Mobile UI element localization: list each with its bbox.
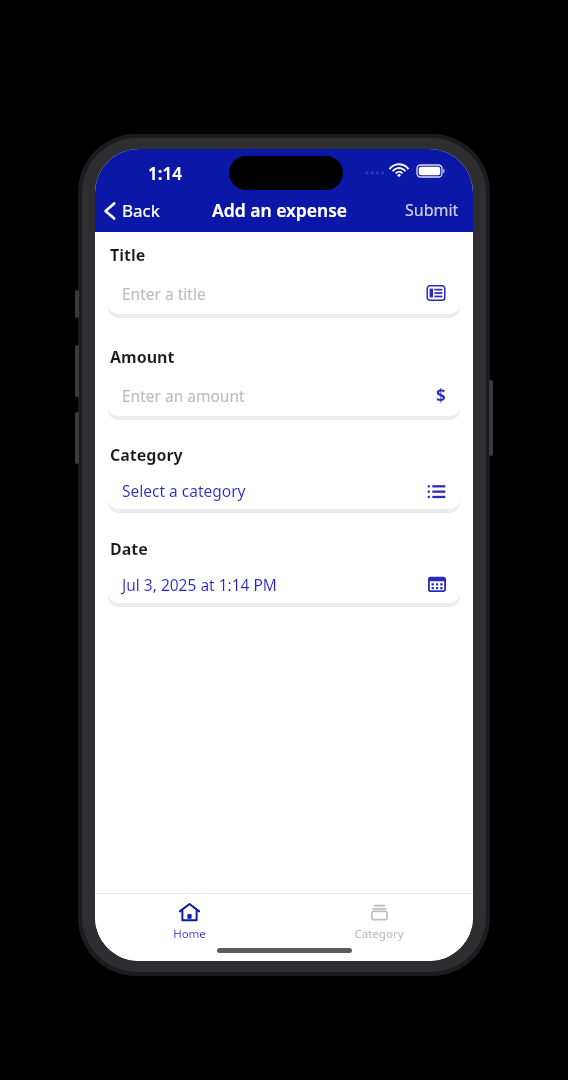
button[interactable]: Enter a title [108, 272, 460, 314]
button[interactable]: Category [284, 897, 473, 945]
staticText: Jul 3, 2025 at 1:14 PM [122, 574, 277, 595]
button[interactable]: Back [95, 195, 168, 226]
button[interactable]: Jul 3, 2025 at 1:14 PM [108, 565, 460, 603]
staticText: 1:14 [148, 162, 182, 185]
button[interactable]: Home [95, 897, 284, 945]
staticText: Category [110, 444, 183, 466]
other: Category list [427, 481, 446, 500]
staticText: Submit [405, 199, 459, 221]
other: Pick date [428, 575, 446, 593]
other: Title suggestions [426, 283, 446, 303]
staticText: Home [173, 926, 206, 942]
staticText: Back [122, 199, 160, 222]
staticText: Date [110, 538, 148, 560]
staticText: Enter a title [122, 283, 206, 304]
staticText: Category [354, 926, 404, 942]
button[interactable]: Enter an amount [108, 374, 460, 416]
staticText: Add an expense [212, 198, 348, 222]
staticText: Title [110, 244, 146, 266]
staticText: Enter an amount [122, 385, 245, 406]
staticText: $ [436, 384, 446, 407]
staticText: Select a category [122, 480, 246, 501]
staticText: Amount [110, 346, 175, 368]
button[interactable]: Select a category [108, 471, 460, 509]
button[interactable]: Submit [391, 193, 473, 227]
